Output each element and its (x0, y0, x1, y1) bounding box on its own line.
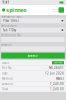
staticText: Method (2, 77, 13, 80)
button[interactable]: Menu (58, 7, 64, 13)
button[interactable]: Sub 7/Day (1, 28, 65, 33)
staticText: Hi, Guest (52, 8, 57, 10)
button[interactable]: Place Order (1, 18, 65, 23)
button[interactable]: Date (0, 71, 66, 76)
staticText: Status (2, 61, 9, 64)
staticText: Sign out (52, 10, 57, 12)
staticText: 12 Jun 2024 (45, 72, 64, 75)
staticText: NX-28401 (49, 66, 64, 70)
staticText: Place Order (3, 19, 19, 22)
button[interactable]: SUBMIT (1, 53, 65, 59)
staticText: 9:41 (2, 1, 9, 4)
staticText: Amount (1, 43, 12, 46)
staticText: 1,240.00 (50, 87, 64, 91)
button[interactable]: Status (0, 60, 66, 65)
staticText: Wallet (56, 77, 64, 80)
button[interactable]: Total (0, 87, 66, 92)
staticText: Amount (2, 82, 13, 86)
staticText: Reference No (1, 34, 21, 37)
staticText: Date (2, 72, 8, 75)
staticText: 1,240.00 (50, 82, 64, 86)
button[interactable]: Amount (0, 81, 66, 87)
staticText: Total (2, 87, 8, 91)
staticText: Select Item (1, 24, 16, 28)
staticText: Sub 7/Day (3, 28, 16, 32)
button[interactable]: Method (0, 76, 66, 81)
staticText: Ref No (2, 66, 12, 70)
staticText: CONFIRMED (53, 62, 62, 64)
staticText: SUBMIT (27, 54, 38, 57)
staticText: Transaction Type (1, 15, 22, 18)
staticText: spinneo (5, 6, 26, 14)
button[interactable]: Ref No (0, 65, 66, 71)
